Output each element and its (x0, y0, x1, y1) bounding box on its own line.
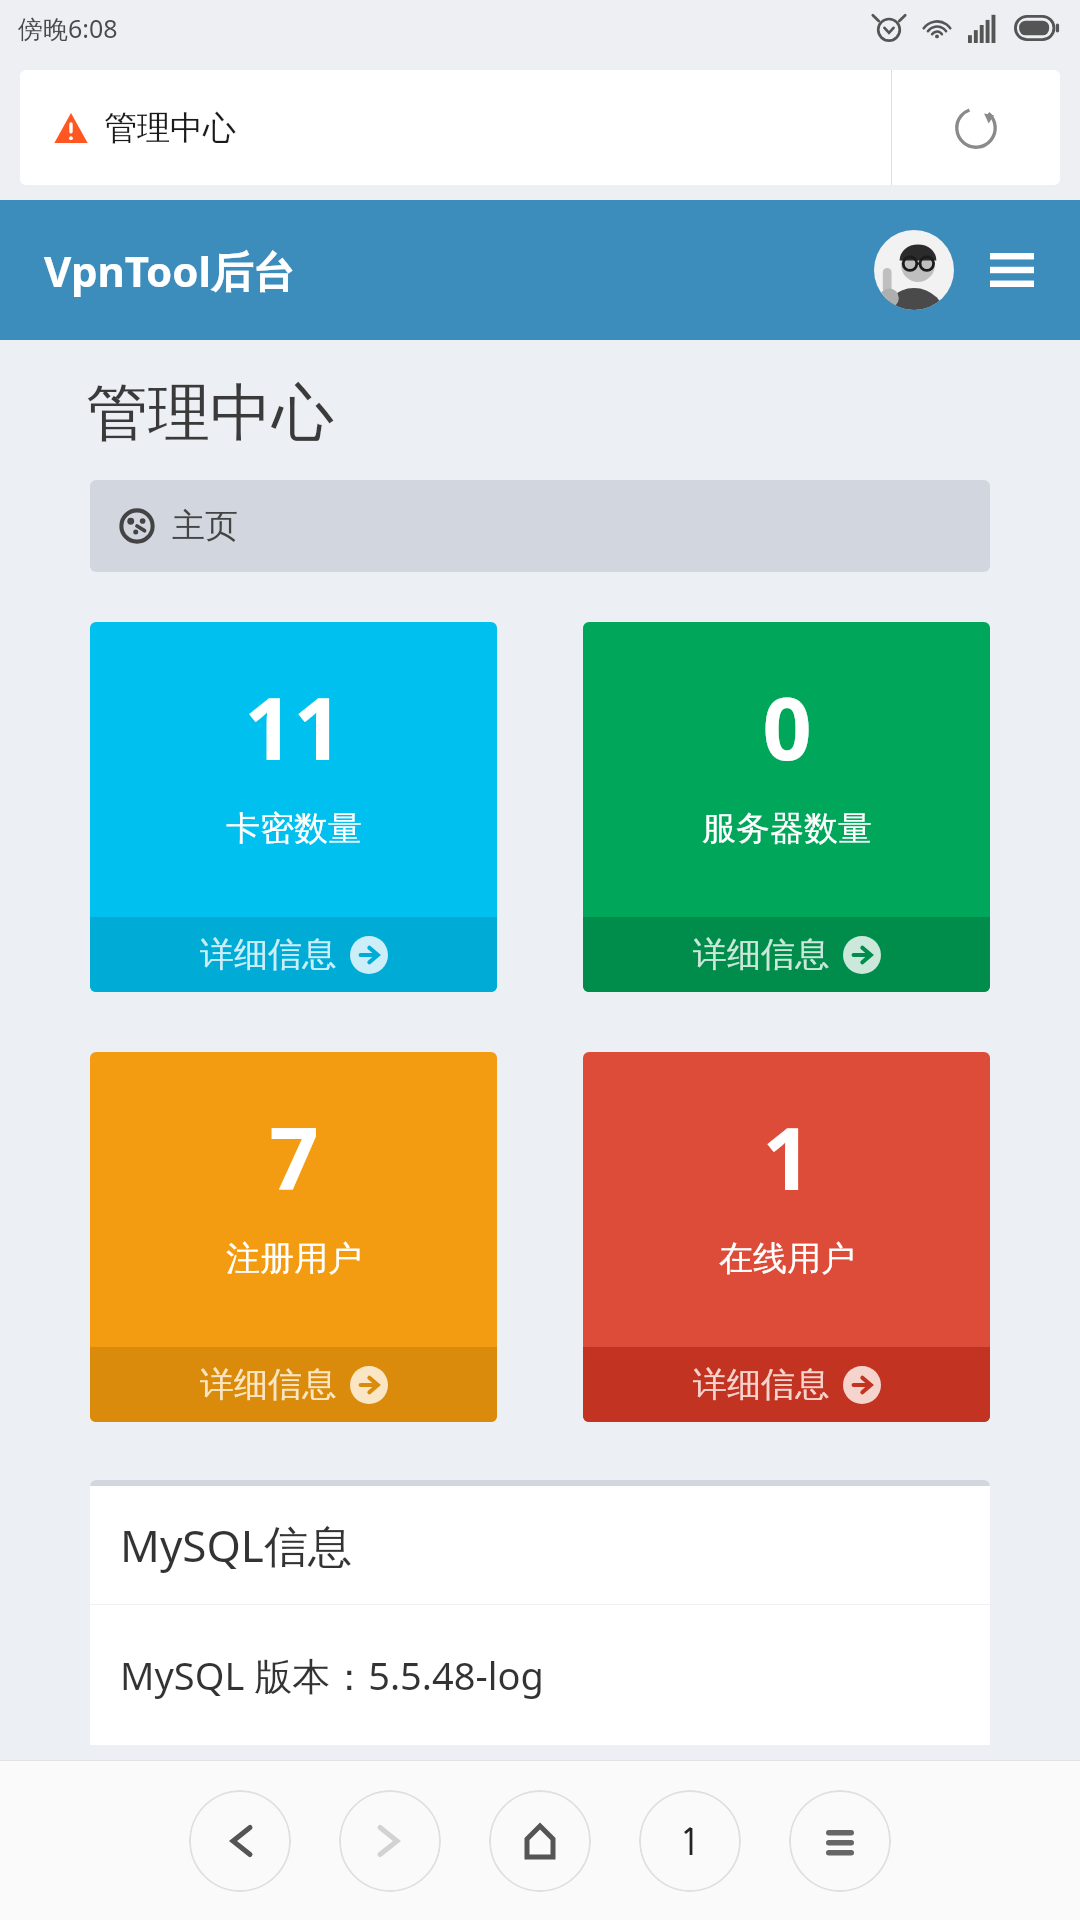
button[interactable]: 管理中心 (20, 70, 1060, 185)
staticText: 11 (244, 668, 343, 785)
button[interactable]: 详细信息 (583, 917, 990, 992)
staticText: 管理中心 (104, 107, 236, 149)
button[interactable]: 详细信息 (90, 1347, 497, 1422)
button[interactable]: Refresh (892, 70, 1060, 185)
button[interactable]: 详细信息 (90, 917, 497, 992)
button[interactable]: 1 (583, 1052, 990, 1422)
staticText: MySQL信息 (120, 1515, 352, 1575)
staticText: 卡密数量 (226, 807, 362, 850)
button[interactable]: Tabs (639, 1790, 741, 1892)
staticText: 在线用户 (719, 1237, 855, 1280)
staticText: 1 (762, 1098, 812, 1215)
staticText: 详细信息 (200, 1363, 336, 1406)
staticText: MySQL 版本：5.5.48-log (120, 1649, 544, 1701)
staticText: 注册用户 (226, 1237, 362, 1280)
button[interactable]: 主页 (90, 480, 990, 572)
button[interactable]: 0 (583, 622, 990, 992)
staticText: 管理中心 (86, 374, 334, 452)
staticText: 主页 (172, 505, 238, 547)
button[interactable]: Profile (874, 230, 954, 310)
button[interactable]: Home (489, 1790, 591, 1892)
button[interactable]: 7 (90, 1052, 497, 1422)
button[interactable]: Menu (789, 1790, 891, 1892)
staticText: 7 (269, 1098, 319, 1215)
button[interactable]: 11 (90, 622, 497, 992)
button[interactable]: 详细信息 (583, 1347, 990, 1422)
staticText: 详细信息 (693, 933, 829, 976)
staticText: 傍晚6:08 (18, 11, 118, 45)
staticText: 0 (762, 668, 812, 785)
button[interactable]: Menu (974, 232, 1050, 308)
staticText: 详细信息 (693, 1363, 829, 1406)
staticText: VpnTool后台 (44, 242, 296, 299)
staticText: 服务器数量 (702, 807, 872, 850)
button[interactable]: Forward (339, 1790, 441, 1892)
button[interactable]: Back (189, 1790, 291, 1892)
staticText: 详细信息 (200, 933, 336, 976)
